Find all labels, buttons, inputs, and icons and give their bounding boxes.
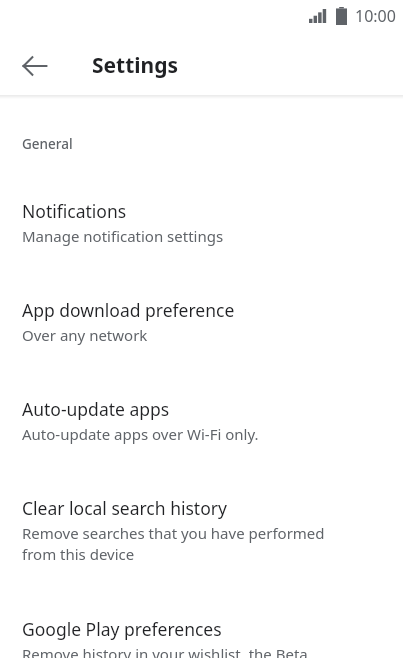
staticText: Remove history in your wishlist, the Bet… (22, 644, 357, 658)
button[interactable]: App download preference (0, 284, 403, 359)
staticText: General (22, 135, 73, 153)
staticText: Manage notification settings (22, 226, 224, 246)
button[interactable]: Back (11, 42, 59, 90)
staticText: 10:00 (355, 5, 396, 27)
staticText: Google Play preferences (22, 617, 222, 641)
staticText: App download preference (22, 298, 235, 322)
button[interactable]: Google Play preferences (0, 603, 403, 672)
staticText: Auto-update apps (22, 397, 170, 421)
staticText: Over any network (22, 325, 148, 345)
staticText: Auto-update apps over Wi-Fi only. (22, 424, 259, 444)
button[interactable]: Notifications (0, 185, 403, 260)
staticText: Clear local search history (22, 496, 227, 520)
button[interactable]: Auto-update apps (0, 383, 403, 458)
button[interactable]: Clear local search history (0, 482, 403, 579)
staticText: Remove searches that you have performed … (22, 523, 357, 565)
staticText: Notifications (22, 199, 127, 223)
staticText: Settings (92, 51, 179, 80)
